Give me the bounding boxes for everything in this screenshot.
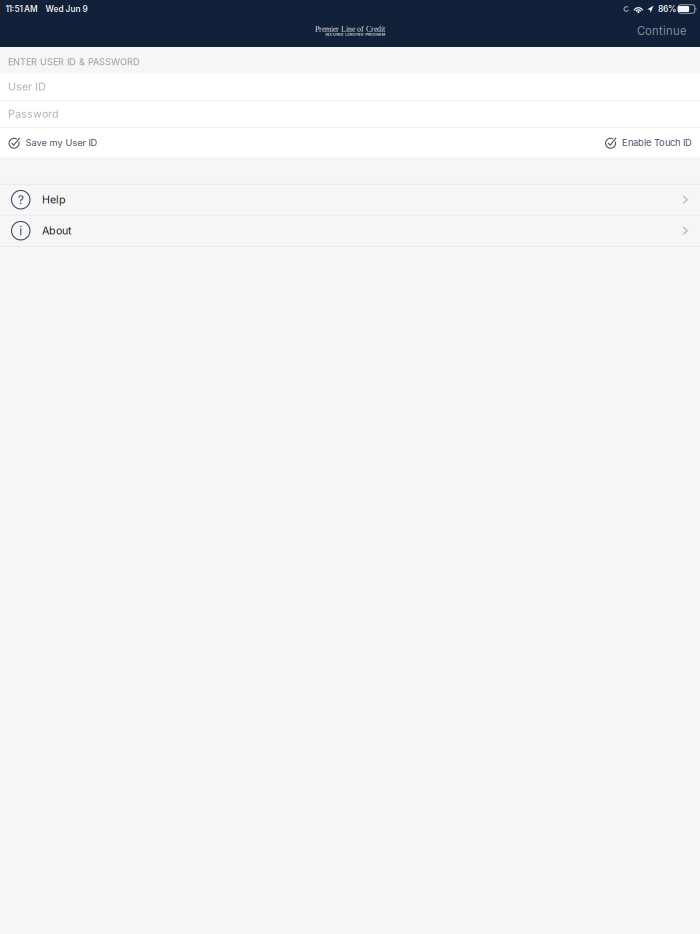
button[interactable]: ? — [0, 184, 700, 215]
staticText: Help — [42, 193, 66, 206]
staticText: Password — [8, 107, 59, 120]
button[interactable]: Continue — [624, 19, 700, 46]
staticText: Continue — [637, 24, 687, 38]
staticText: Wed Jun 9 — [45, 4, 87, 14]
button[interactable]: i — [0, 215, 700, 246]
staticText: i — [19, 223, 22, 238]
staticText: ? — [18, 192, 24, 207]
staticText: 11:51 — [5, 4, 22, 14]
button[interactable]: User ID — [0, 73, 700, 100]
button[interactable]: Enable Touch ID — [597, 127, 700, 158]
staticText: User ID — [8, 80, 46, 93]
button[interactable]: Password — [0, 100, 700, 127]
staticText: Premier Line of Credit — [315, 25, 385, 33]
staticText: About — [42, 224, 71, 237]
button[interactable]: Save my User ID — [0, 127, 105, 158]
staticText: Enable Touch ID — [622, 137, 692, 148]
staticText: ENTER USER ID & PASSWORD — [8, 56, 140, 67]
staticText: AM — [24, 4, 38, 14]
staticText: 86% — [658, 4, 676, 14]
staticText: SECURED LENDING PROGRAM — [325, 32, 385, 37]
staticText: Save my User ID — [25, 137, 97, 148]
